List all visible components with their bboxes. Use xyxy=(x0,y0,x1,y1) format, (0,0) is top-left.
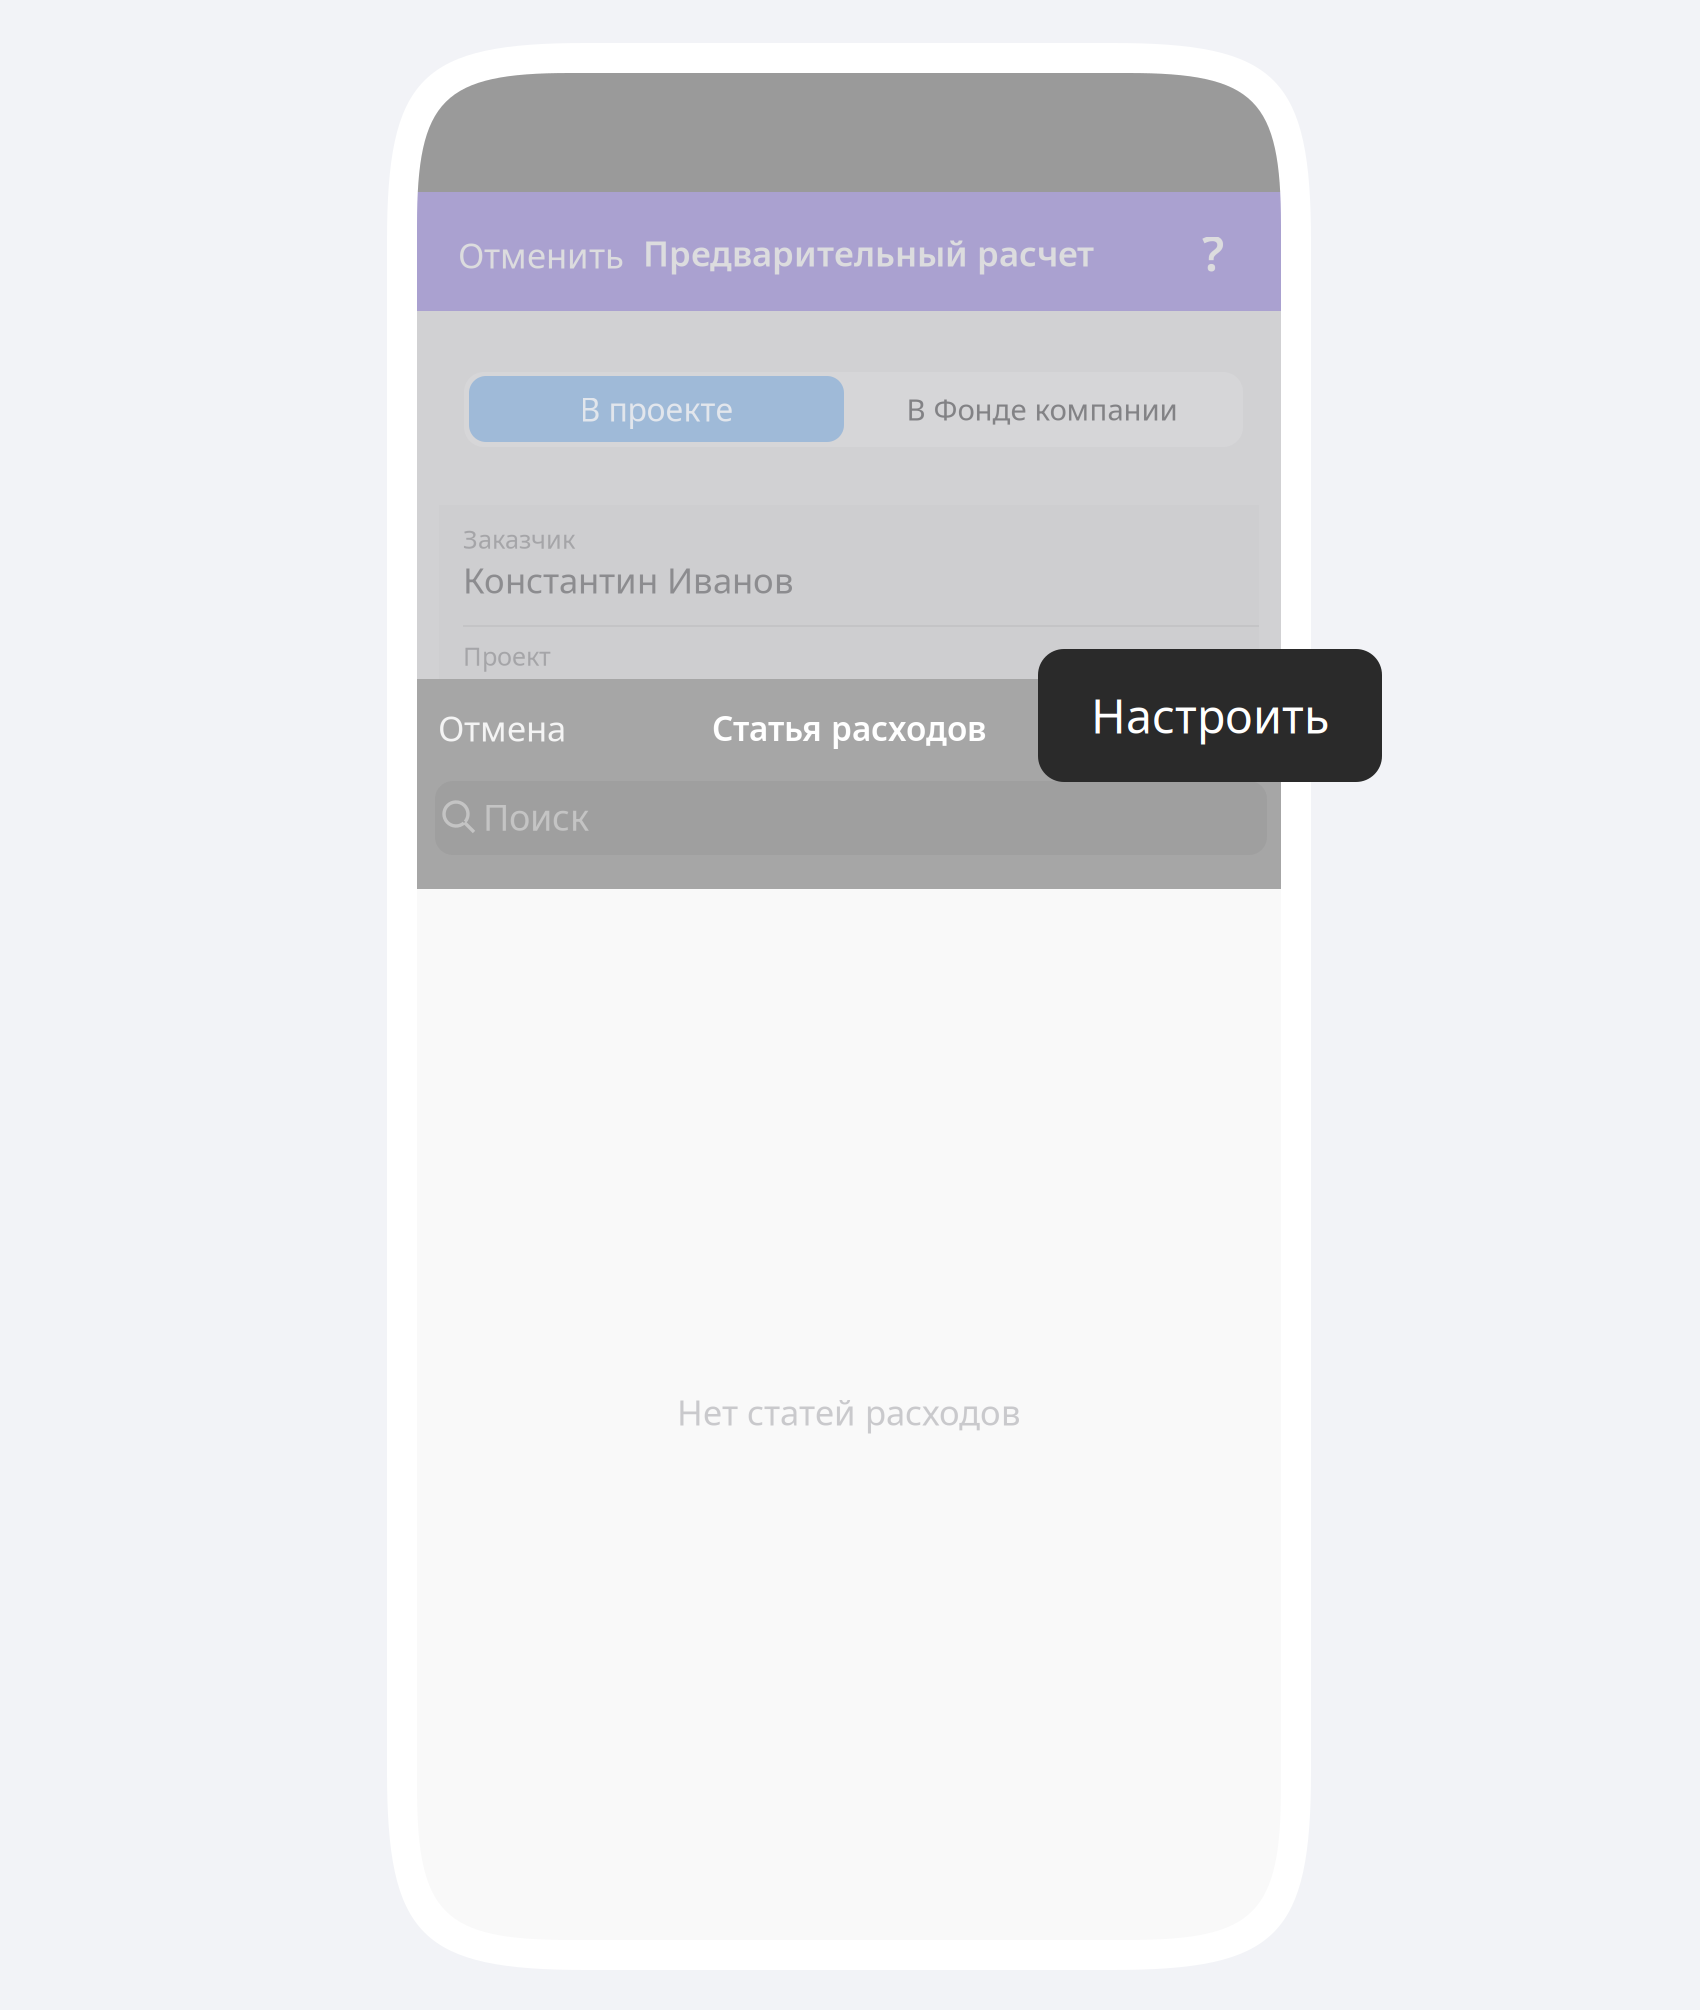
button[interactable]: Проект xyxy=(439,627,1259,705)
button[interactable]: Настроить xyxy=(1038,649,1382,782)
staticText: Статья расходов xyxy=(712,706,986,750)
staticText: Настроить xyxy=(1091,684,1329,746)
staticText: Нет статей расходов xyxy=(677,1389,1021,1435)
button[interactable]: Поиск xyxy=(435,781,1267,855)
button[interactable]: В проекте xyxy=(469,376,844,442)
staticText: В проекте xyxy=(579,388,733,430)
staticText: Поиск xyxy=(483,793,589,841)
staticText: Отменить xyxy=(458,232,624,278)
button[interactable]: Отмена xyxy=(438,705,566,751)
button[interactable]: Справка xyxy=(1187,225,1239,281)
staticText: Константин Иванов xyxy=(463,557,794,603)
button[interactable]: В Фонде компании xyxy=(846,376,1238,442)
staticText: Проект xyxy=(463,639,551,673)
staticText: Заказчик xyxy=(463,522,575,556)
staticText: В Фонде компании xyxy=(906,389,1177,428)
staticText: Отмена xyxy=(438,705,566,751)
button[interactable]: Отменить xyxy=(458,232,624,278)
button[interactable]: Заказчик xyxy=(439,505,1259,625)
staticText: Предварительный расчет xyxy=(643,230,1094,276)
staticText: ? xyxy=(1202,221,1224,285)
